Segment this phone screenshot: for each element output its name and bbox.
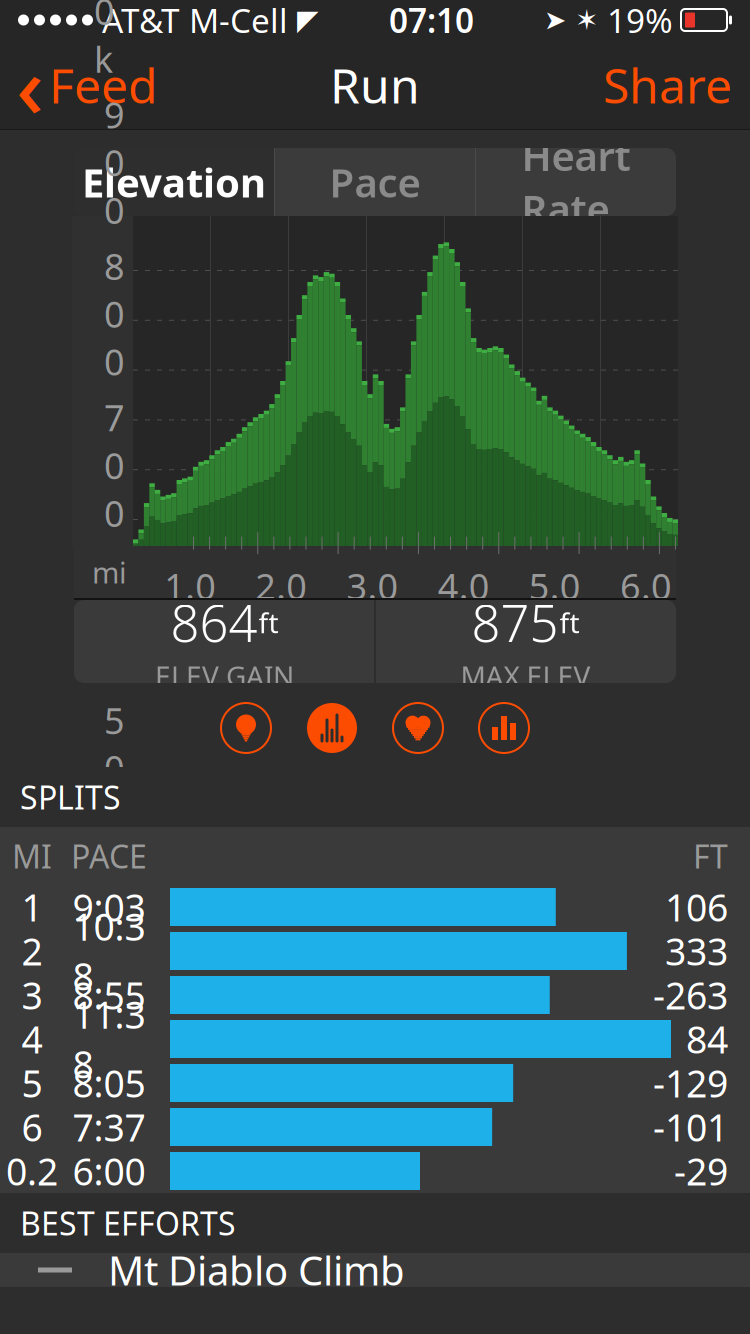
staticText: PACE — [71, 835, 147, 877]
staticText: 900 — [104, 91, 125, 234]
staticText: -29 — [674, 1146, 728, 1196]
staticText: ➤ — [544, 5, 566, 35]
button[interactable]: Splits — [472, 696, 536, 760]
staticText: 6:00 — [72, 1146, 145, 1196]
staticText: FT — [693, 835, 728, 877]
button[interactable]: Analysis — [300, 696, 364, 760]
staticText: -101 — [653, 1102, 728, 1152]
staticText: -129 — [653, 1058, 728, 1108]
staticText: 2 — [21, 926, 42, 976]
staticText: 11:38 — [72, 989, 145, 1089]
staticText: Run — [330, 53, 420, 117]
staticText: 1 — [21, 882, 42, 932]
staticText: 106 — [665, 882, 728, 932]
button[interactable]: Mt Diablo Climb — [0, 1253, 750, 1287]
staticText: Mt Diablo Climb — [108, 1243, 405, 1296]
staticText: 6 — [21, 1102, 42, 1152]
staticText: 0.2 — [6, 1146, 58, 1196]
staticText: Pace — [329, 155, 420, 208]
staticText: 333 — [665, 926, 728, 976]
staticText: 19% — [607, 0, 673, 42]
staticText: ft — [258, 604, 278, 641]
staticText: 5.0 — [529, 562, 581, 610]
staticText: 1.0k — [94, 0, 125, 83]
staticText: Elevation — [82, 155, 266, 208]
staticText: BEST EFFORTS — [20, 1202, 236, 1244]
staticText: SPLITS — [20, 776, 121, 818]
button[interactable]: Share — [603, 43, 750, 127]
staticText: 84 — [686, 1014, 728, 1064]
staticText: 4.0 — [438, 562, 490, 610]
staticText: 700 — [104, 393, 125, 537]
staticText: 5 — [21, 1058, 42, 1108]
button[interactable]: ‹ — [0, 24, 158, 146]
staticText: 9:03 — [72, 882, 145, 932]
staticText: ft — [559, 604, 579, 641]
staticText: 07:10 — [389, 0, 474, 42]
staticText: MAX ELEV — [460, 657, 590, 694]
staticText: 10:38 — [72, 901, 145, 1001]
button[interactable]: Heart Rate — [386, 696, 450, 760]
staticText: 600 — [104, 545, 125, 688]
staticText: 800 — [104, 242, 125, 385]
staticText: MI — [12, 835, 52, 877]
staticText: ‹ — [16, 28, 44, 142]
button[interactable]: Pace — [275, 148, 475, 216]
staticText: Heart Rate — [521, 129, 630, 235]
staticText: 1.0 — [164, 562, 216, 610]
staticText: mi — [92, 552, 127, 591]
staticText: Share — [603, 53, 732, 117]
button[interactable]: Elevation — [74, 148, 274, 216]
staticText: 7:37 — [72, 1102, 145, 1152]
staticText: Feed — [49, 53, 158, 117]
staticText: 6.0 — [620, 562, 672, 610]
button[interactable]: Heart Rate — [476, 148, 676, 216]
staticText: ✶ — [575, 4, 598, 36]
staticText: 3.0 — [346, 562, 398, 610]
button[interactable]: Map — [214, 696, 278, 760]
staticText: 4 — [21, 1014, 42, 1064]
staticText: ELEV GAIN — [155, 657, 294, 694]
staticText: 8:05 — [72, 1058, 145, 1108]
staticText: 500 — [104, 696, 125, 840]
staticText: 3 — [21, 970, 42, 1020]
staticText: 864 — [170, 589, 257, 656]
staticText: AT&T M-Cell — [102, 0, 288, 42]
staticText: 2.0 — [255, 562, 307, 610]
staticText: -263 — [653, 970, 728, 1020]
staticText: 8:55 — [72, 970, 145, 1020]
staticText: ◤ — [297, 4, 319, 36]
staticText: 875 — [471, 589, 558, 656]
